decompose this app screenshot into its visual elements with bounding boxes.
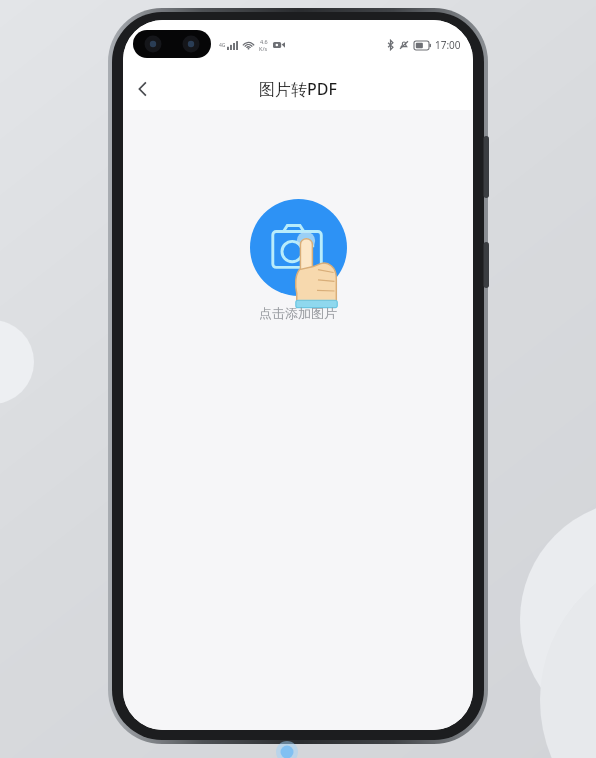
staticText: K/s	[259, 45, 268, 52]
button[interactable]: Back	[123, 69, 163, 109]
staticText: 点击添加图片	[259, 305, 337, 321]
staticText: 图片转PDF	[259, 78, 337, 100]
button[interactable]: 点击添加图片	[238, 199, 358, 321]
staticText: 17:00	[435, 38, 461, 52]
staticText: 4.6	[260, 38, 268, 45]
staticText: 4G	[219, 42, 226, 49]
